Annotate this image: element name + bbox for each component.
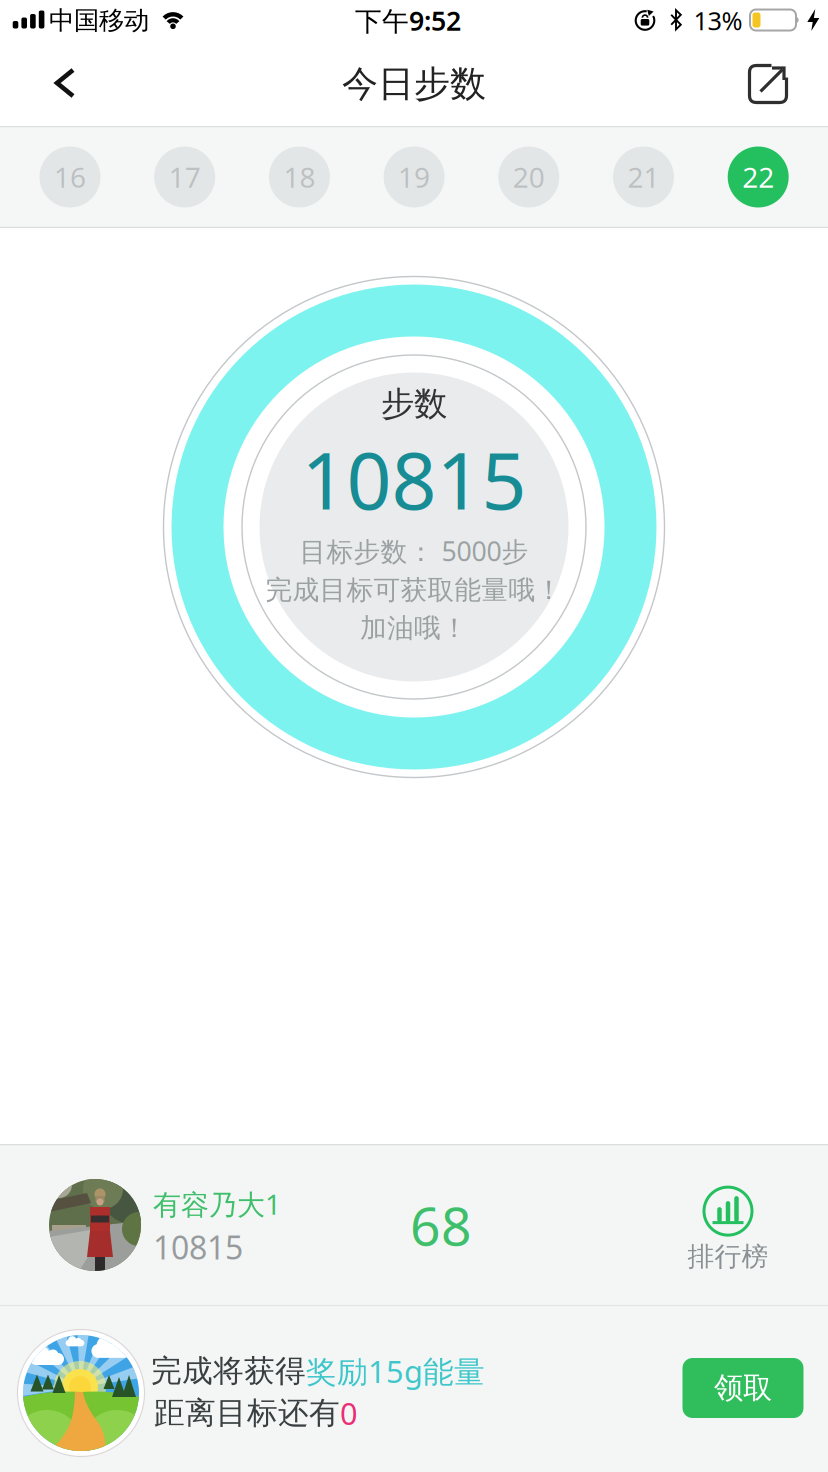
button[interactable]: 21: [613, 146, 674, 207]
staticText: 距离目标还有: [154, 1394, 340, 1432]
staticText: 20: [513, 158, 545, 196]
button[interactable]: 22: [728, 146, 789, 207]
staticText: 领取: [714, 1370, 772, 1406]
staticText: 排行榜: [687, 1240, 768, 1273]
button[interactable]: 16: [39, 146, 100, 207]
staticText: 0: [340, 1393, 358, 1433]
staticText: 21: [627, 158, 659, 196]
staticText: 加油哦！: [360, 612, 468, 644]
staticText: 22: [742, 158, 774, 196]
staticText: 步数: [381, 383, 447, 424]
staticText: 68: [410, 1190, 472, 1260]
staticText: 今日步数: [342, 62, 486, 106]
button[interactable]: 排行榜: [687, 1185, 768, 1273]
staticText: 奖励15g能量: [306, 1351, 485, 1391]
staticText: 17: [169, 158, 201, 196]
button[interactable]: 18: [269, 146, 330, 207]
button[interactable]: 领取: [682, 1358, 803, 1418]
staticText: 13%: [693, 4, 742, 37]
button[interactable]: 20: [498, 146, 559, 207]
staticText: 完成目标可获取能量哦！: [265, 574, 562, 606]
button[interactable]: Back: [54, 67, 90, 101]
button[interactable]: 19: [384, 146, 445, 207]
staticText: 目标步数： 5000步: [299, 533, 528, 569]
staticText: 18: [283, 158, 315, 196]
staticText: 有容乃大1: [153, 1185, 281, 1223]
staticText: 10815: [153, 1226, 243, 1268]
button[interactable]: Profile: [49, 1179, 141, 1271]
staticText: 完成将获得: [151, 1352, 306, 1390]
staticText: 19: [398, 158, 430, 196]
staticText: 中国移动: [49, 5, 149, 36]
staticText: 10815: [301, 427, 526, 531]
staticText: 下午9:52: [355, 3, 461, 38]
button[interactable]: Share: [747, 63, 788, 104]
button[interactable]: 17: [154, 146, 215, 207]
staticText: 16: [54, 158, 86, 196]
